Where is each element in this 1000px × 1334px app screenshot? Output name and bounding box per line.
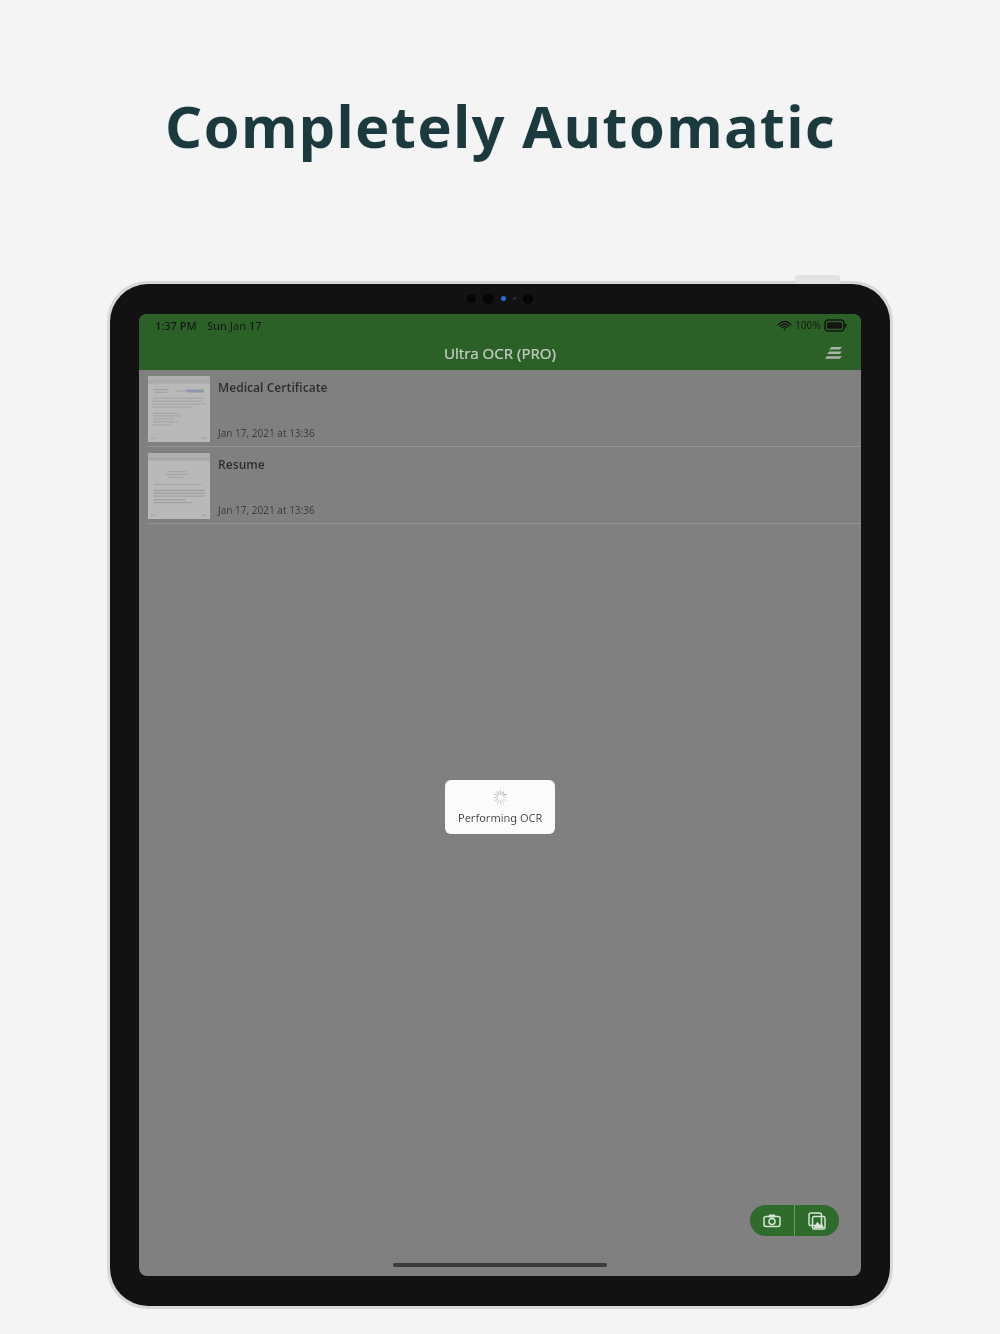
staticText: Completely Automatic bbox=[165, 86, 836, 165]
staticText: Jan 17, 2021 at 13:36 bbox=[218, 426, 315, 440]
button[interactable]: Take photo bbox=[750, 1205, 794, 1236]
staticText: Jan 17, 2021 at 13:36 bbox=[218, 503, 315, 517]
button[interactable]: Menu bbox=[817, 336, 851, 370]
button[interactable]: Choose from gallery bbox=[795, 1205, 839, 1236]
staticText: Medical Certificate bbox=[218, 379, 328, 395]
staticText: Performing OCR bbox=[458, 810, 543, 825]
staticText: Resume bbox=[218, 456, 265, 472]
button[interactable]: Medical Certificate bbox=[139, 370, 861, 447]
staticText: Sun Jan 17 bbox=[207, 318, 262, 333]
button[interactable]: Resume bbox=[139, 447, 861, 524]
staticText: 1:37 PM bbox=[155, 318, 197, 333]
staticText: 100% bbox=[795, 318, 821, 332]
staticText: Ultra OCR (PRO) bbox=[444, 343, 557, 363]
